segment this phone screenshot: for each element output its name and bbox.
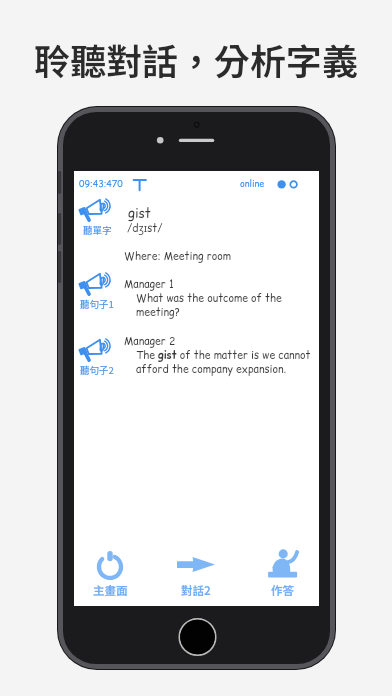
staticText: online — [240, 178, 265, 191]
button[interactable]: 聽句子2 — [75, 338, 119, 377]
staticText: The gist of the matter is we cannot affo… — [136, 348, 311, 376]
staticText: 主畫面 — [93, 582, 128, 599]
staticText: Manager 2 — [124, 334, 176, 349]
staticText: gist — [128, 204, 151, 222]
staticText: 聽單字 — [83, 223, 112, 237]
button[interactable]: 聽句子1 — [75, 272, 119, 311]
button[interactable]: Home — [78, 550, 142, 599]
staticText: 09:43:470 — [79, 178, 123, 191]
button[interactable]: Answer — [250, 550, 314, 599]
staticText: 聆聽對話，分析字義 — [0, 33, 392, 85]
staticText: /dʒɪst/ — [127, 221, 163, 236]
staticText: 作答 — [271, 582, 294, 599]
staticText: 聽句子1 — [80, 297, 114, 311]
button[interactable]: 聽單字 — [75, 198, 119, 237]
staticText: Where: Meeting room — [124, 249, 231, 264]
button[interactable]: Dialogue 2 — [164, 550, 228, 599]
staticText: Manager 1 — [124, 277, 174, 292]
staticText: What was the outcome of the meeting? — [136, 291, 282, 319]
staticText: 聽句子2 — [80, 363, 114, 377]
staticText: 對話2 — [181, 582, 211, 599]
